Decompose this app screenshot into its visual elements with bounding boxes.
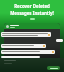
button[interactable] [1,56,40,58]
button[interactable] [1,44,46,48]
staticText: Recover Deleted [14,3,50,9]
button[interactable] [4,23,60,29]
button[interactable] [56,39,63,42]
button[interactable] [1,32,51,37]
button[interactable]: Recover now [47,66,60,70]
button[interactable] [1,50,55,54]
staticText: Messages Instantly! [10,10,54,16]
